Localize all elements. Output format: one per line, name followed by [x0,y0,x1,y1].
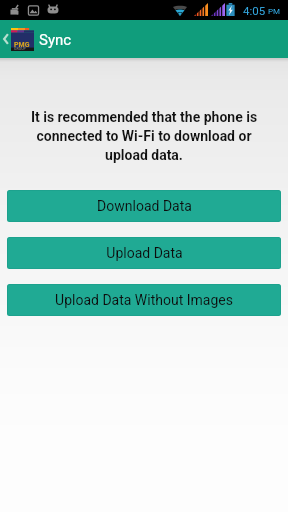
staticText: GROUP [14,47,26,51]
button[interactable]: Navigate up [0,20,11,58]
button[interactable]: Upload Data [7,237,281,269]
staticText: Upload Data [106,245,183,261]
staticText: PMG [14,41,30,49]
staticText: Download Data [97,198,192,214]
staticText: Sync [39,31,72,49]
staticText: PM [268,7,281,16]
staticText: It is recommended that the phone is conn… [16,109,272,163]
staticText: 4:05 [243,4,266,17]
button[interactable]: Download Data [7,190,281,222]
staticText: Upload Data Without Images [55,292,233,308]
button[interactable]: Upload Data Without Images [7,284,281,316]
